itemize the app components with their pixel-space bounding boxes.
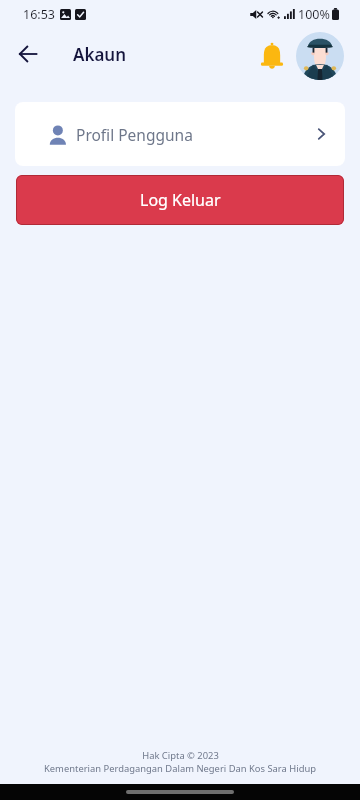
staticText: Hak Cipta © 2023 xyxy=(142,749,219,762)
staticText: Log Keluar xyxy=(140,189,221,211)
button[interactable]: Log Keluar xyxy=(16,175,344,225)
button[interactable]: Profil Pengguna xyxy=(15,102,345,166)
staticText: 100% xyxy=(298,6,330,23)
staticText: 16:53 xyxy=(23,6,55,23)
button[interactable]: Back xyxy=(12,38,44,70)
staticText: Akaun xyxy=(73,43,127,66)
button[interactable]: Notifications xyxy=(255,39,289,73)
button[interactable]: Profile xyxy=(296,32,344,80)
staticText: Profil Pengguna xyxy=(76,124,193,145)
staticText: Kementerian Perdagangan Dalam Negeri Dan… xyxy=(44,762,316,775)
